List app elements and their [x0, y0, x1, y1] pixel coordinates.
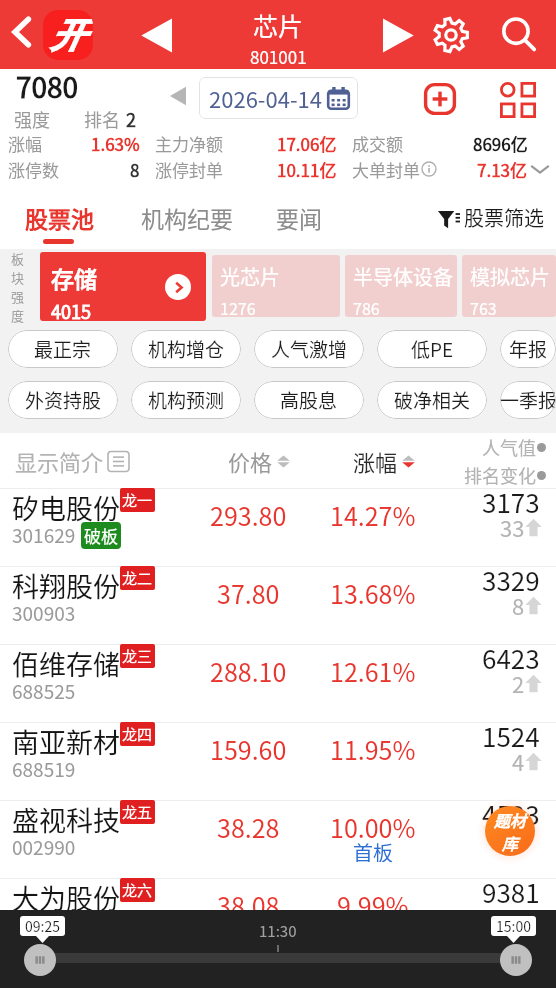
button[interactable]: 人气值 — [464, 434, 546, 488]
button[interactable]: 机构增仓 — [131, 330, 241, 368]
button[interactable]: 股票池 — [0, 186, 117, 249]
button[interactable]: 机构预测 — [131, 381, 241, 419]
staticText: 10.00% — [330, 809, 416, 839]
staticText: 8 — [512, 589, 525, 621]
button[interactable]: 价格 — [228, 445, 291, 477]
staticText: 破净相关 — [394, 386, 471, 414]
button[interactable]: Previous sector — [136, 13, 180, 57]
button[interactable]: 佰维存储 — [0, 645, 556, 723]
button[interactable]: 矽电股份 — [0, 489, 556, 567]
staticText: 6423 — [482, 639, 540, 677]
button[interactable]: 涨幅 — [353, 445, 416, 477]
button[interactable]: 破净相关 — [377, 381, 487, 419]
button[interactable]: Add to watchlist — [421, 80, 459, 118]
button[interactable]: 低PE — [377, 330, 487, 368]
staticText: 159.60 — [210, 731, 287, 761]
staticText: 光芯片 — [220, 262, 280, 291]
staticText: 科翔股份 — [12, 566, 120, 605]
button[interactable]: Back — [0, 10, 44, 54]
staticText: 7.13亿 — [477, 157, 528, 181]
button[interactable]: 模拟芯片 — [462, 255, 556, 317]
button[interactable]: 一季报 — [500, 381, 556, 419]
staticText: 37.80 — [217, 575, 280, 605]
button[interactable]: 南亚新材 — [0, 723, 556, 801]
staticText: 4015 — [51, 298, 91, 321]
staticText: 高股息 — [280, 386, 338, 414]
button[interactable]: 题材 — [485, 806, 535, 856]
staticText: 人气激增 — [271, 335, 348, 363]
button[interactable]: Start time handle — [24, 944, 56, 976]
staticText: 存储 — [51, 261, 97, 294]
staticText: 首板 — [353, 838, 393, 862]
staticText: 龙六 — [122, 879, 153, 901]
staticText: 半导体设备 — [353, 262, 453, 291]
staticText: 2 — [126, 106, 136, 132]
staticText: 强 — [11, 287, 25, 306]
button[interactable]: 要闻 — [254, 186, 344, 249]
staticText: 3329 — [482, 561, 540, 599]
button[interactable]: 盛视科技 — [0, 801, 556, 879]
staticText: 度 — [11, 306, 25, 323]
staticText: 688519 — [12, 755, 76, 783]
button[interactable]: 最正宗 — [8, 330, 118, 368]
staticText: 南亚新材 — [12, 722, 120, 761]
staticText: 最正宗 — [34, 335, 92, 363]
staticText: 板 — [11, 249, 25, 268]
button[interactable]: 年报 — [500, 330, 556, 368]
button[interactable]: 科翔股份 — [0, 567, 556, 645]
staticText: 293.80 — [210, 497, 287, 527]
staticText: 801001 — [250, 44, 307, 69]
button[interactable]: 人气激增 — [254, 330, 364, 368]
staticText: 涨幅 — [353, 445, 398, 477]
staticText: 09:25 — [25, 916, 60, 936]
staticText: 排名变化 — [464, 462, 536, 488]
button[interactable]: Search — [497, 13, 541, 57]
button[interactable]: 存储 — [40, 252, 206, 321]
staticText: 佰维存储 — [12, 644, 120, 683]
staticText: 股票池 — [25, 201, 94, 234]
staticText: 002213 — [12, 911, 76, 939]
staticText: 15:00 — [496, 916, 531, 936]
staticText: 低PE — [411, 335, 454, 363]
staticText: 盛视科技 — [12, 800, 120, 839]
button[interactable]: 开 — [43, 10, 93, 60]
staticText: 大单封单 — [352, 157, 420, 181]
staticText: 主力净额 — [155, 131, 223, 155]
staticText: 龙一 — [122, 489, 153, 511]
button[interactable]: 光芯片 — [212, 255, 340, 317]
staticText: 股票筛选 — [464, 203, 544, 232]
button[interactable]: Settings — [429, 13, 473, 57]
button[interactable]: 大为股份 — [0, 879, 556, 957]
staticText: 11:30 — [259, 920, 297, 942]
button[interactable]: 机构纪要 — [117, 186, 254, 249]
button[interactable]: End time handle — [500, 944, 532, 976]
staticText: 机构预测 — [148, 386, 225, 414]
staticText: 17.06亿 — [277, 131, 337, 155]
staticText: 002990 — [12, 833, 76, 861]
staticText: 块 — [11, 268, 25, 287]
staticText: 1.63% — [91, 131, 140, 155]
staticText: 12.61% — [330, 653, 416, 683]
button[interactable]: 外资持股 — [8, 381, 118, 419]
button[interactable]: Layout grid — [498, 80, 538, 120]
staticText: 龙三 — [122, 645, 153, 667]
button[interactable]: Next sector — [375, 13, 419, 57]
staticText: 2026-04-14 — [209, 82, 322, 114]
button[interactable]: 半导体设备 — [345, 255, 457, 317]
staticText: 题材 — [494, 808, 527, 831]
button[interactable]: Previous day — [164, 82, 192, 110]
button[interactable]: 2026-04-14 — [199, 77, 358, 119]
button[interactable]: Expand — [528, 157, 552, 181]
staticText: 288.10 — [210, 653, 287, 683]
staticText: 13.68% — [330, 575, 416, 605]
button[interactable]: 股票筛选 — [438, 186, 556, 249]
button[interactable]: 显示简介 — [15, 445, 130, 477]
staticText: 模拟芯片 — [470, 262, 550, 291]
staticText: 4 — [512, 745, 525, 777]
staticText: 7080 — [16, 66, 79, 107]
staticText: 龙二 — [122, 567, 153, 589]
staticText: 2 — [512, 667, 525, 699]
staticText: 786 — [353, 296, 380, 317]
button[interactable]: 高股息 — [254, 381, 364, 419]
staticText: 11.95% — [330, 731, 416, 761]
